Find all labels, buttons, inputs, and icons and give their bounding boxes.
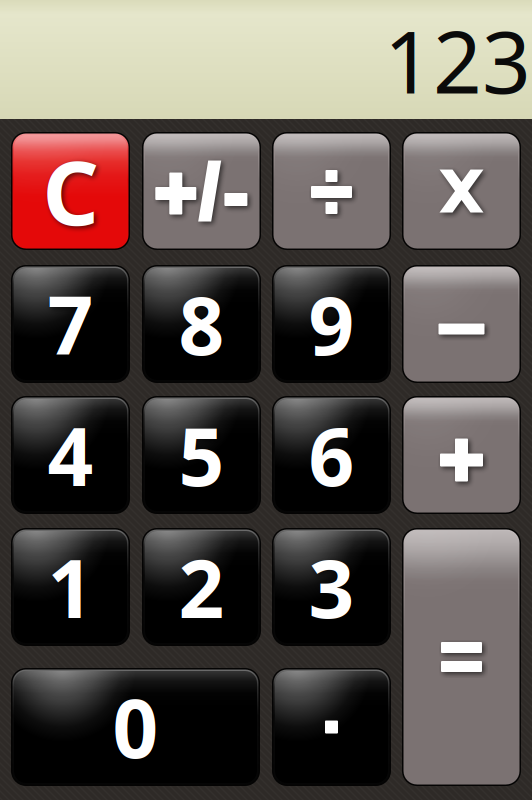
button[interactable]: Plus minus — [142, 132, 261, 250]
staticText: 7 — [47, 271, 93, 377]
button[interactable]: 8 — [142, 265, 261, 383]
button[interactable]: 9 — [272, 265, 391, 383]
button[interactable]: 7 — [11, 265, 130, 383]
staticText: 0 — [112, 674, 158, 780]
button[interactable]: 0 — [11, 668, 260, 786]
staticText: 2 — [178, 534, 224, 640]
button[interactable]: 6 — [272, 396, 391, 514]
staticText: 1 — [47, 534, 93, 640]
button[interactable]: Equals — [402, 528, 521, 786]
button[interactable]: Decimal point — [272, 668, 391, 786]
staticText: 123 — [384, 4, 531, 117]
button[interactable]: Plus — [402, 396, 521, 514]
button[interactable]: 1 — [11, 528, 130, 646]
button[interactable]: Minus — [402, 265, 521, 383]
button[interactable]: 4 — [11, 396, 130, 514]
staticText: 8 — [178, 271, 224, 377]
staticText: 4 — [47, 402, 93, 508]
button[interactable]: 5 — [142, 396, 261, 514]
button[interactable]: Multiply — [402, 132, 521, 250]
staticText: C — [42, 133, 98, 249]
button[interactable]: Clear — [11, 132, 130, 250]
button[interactable]: Divide — [272, 132, 391, 250]
staticText: 5 — [178, 402, 224, 508]
button[interactable]: 3 — [272, 528, 391, 646]
staticText: 3 — [308, 534, 354, 640]
button[interactable]: 2 — [142, 528, 261, 646]
staticText: 9 — [308, 271, 354, 377]
staticText: 6 — [308, 402, 354, 508]
